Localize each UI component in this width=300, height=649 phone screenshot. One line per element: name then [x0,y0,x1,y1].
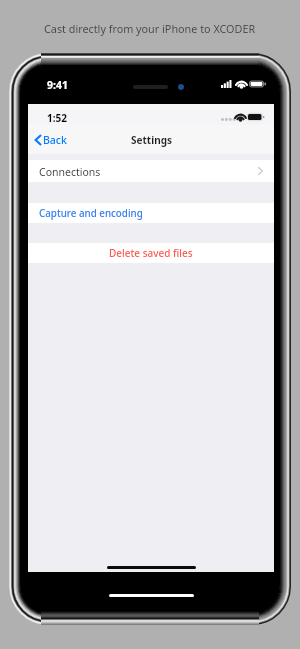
staticText: 9:41 [47,78,68,92]
staticText: Capture and encoding [39,207,143,220]
staticText: Delete saved files [109,246,193,260]
staticText: 1:52 [47,111,67,125]
button[interactable]: Delete saved files [28,243,274,263]
staticText: Cast directly from your iPhone to XCODER [44,21,256,36]
button[interactable]: Capture and encoding [28,203,274,223]
staticText: Back [43,133,67,147]
staticText: Connections [39,165,101,179]
button[interactable]: Connections [28,160,274,182]
staticText: Settings [131,133,172,147]
button[interactable]: Back [28,129,73,151]
